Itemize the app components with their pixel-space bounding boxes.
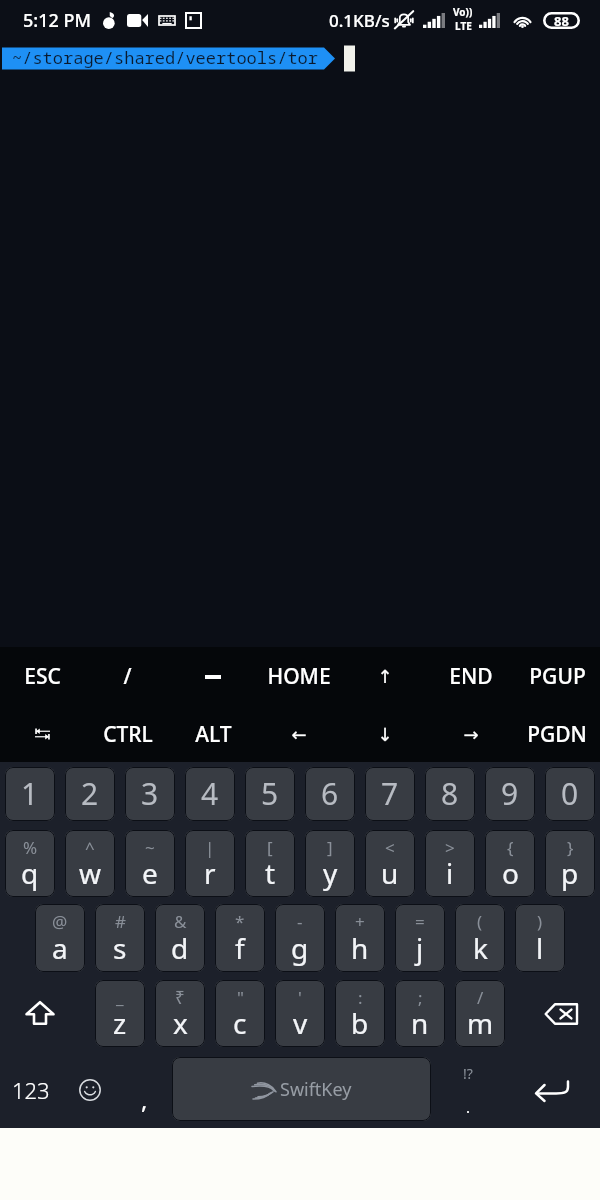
button[interactable]: ( <box>455 904 505 972</box>
button[interactable]: Enter <box>524 1063 580 1119</box>
staticText: t <box>265 854 276 892</box>
staticText: SwiftKey <box>280 1077 352 1102</box>
staticText: < <box>385 836 395 859</box>
staticText: ↓ <box>377 724 393 745</box>
button[interactable]: 6 <box>305 767 355 821</box>
staticText: e <box>142 854 158 892</box>
staticText: ↑ <box>377 666 393 687</box>
staticText: ~/storage/shared/veertools/tor <box>12 46 318 69</box>
button[interactable]: % <box>5 830 55 897</box>
button[interactable]: # <box>95 904 145 972</box>
button[interactable]: ] <box>305 830 355 897</box>
staticText: ← <box>291 724 307 745</box>
button[interactable]: _ <box>95 980 145 1047</box>
button[interactable]: | <box>185 830 235 897</box>
staticText: } <box>567 836 574 859</box>
button[interactable]: ~ <box>125 830 175 897</box>
button[interactable]: 123 <box>3 1062 59 1118</box>
staticText: = <box>415 910 425 933</box>
staticText: . <box>466 1097 471 1117</box>
button[interactable]: + <box>335 904 385 972</box>
staticText: CTRL <box>103 720 153 749</box>
staticText: w <box>79 854 102 892</box>
button[interactable]: Emoji <box>62 1062 117 1118</box>
staticText: ( <box>477 910 483 933</box>
button[interactable]: [ <box>245 830 295 897</box>
button[interactable]: 5 <box>245 767 295 821</box>
button[interactable]: ' <box>275 980 325 1047</box>
button[interactable]: < <box>365 830 415 897</box>
staticText: a <box>52 929 68 967</box>
staticText: i <box>446 854 454 892</box>
button[interactable]: ESC <box>0 647 85 706</box>
staticText: 1 <box>21 773 39 814</box>
button[interactable]: ↑ <box>342 647 428 706</box>
button[interactable]: " <box>215 980 265 1047</box>
staticText: c <box>233 1004 247 1042</box>
button[interactable]: ) <box>515 904 565 972</box>
staticText: & <box>174 910 187 933</box>
button[interactable]: ₹ <box>155 980 205 1047</box>
staticText: ; <box>418 986 423 1009</box>
button[interactable]: / <box>455 980 505 1047</box>
staticText: 0.1KB/s <box>329 9 390 32</box>
button[interactable]: Tab <box>0 706 85 762</box>
staticText: LTE <box>455 19 472 33</box>
staticText: s <box>113 929 127 967</box>
staticText: h <box>351 929 369 967</box>
button[interactable]: ^ <box>65 830 115 897</box>
staticText: n <box>411 1004 429 1042</box>
button[interactable]: ← <box>256 706 342 762</box>
button[interactable]: 4 <box>185 767 235 821</box>
staticText: r <box>204 854 216 892</box>
button[interactable]: Dash <box>170 647 256 706</box>
button[interactable]: = <box>395 904 445 972</box>
button[interactable]: ALT <box>170 706 256 762</box>
button[interactable]: 9 <box>485 767 535 821</box>
button[interactable]: / <box>85 647 170 706</box>
button[interactable]: & <box>155 904 205 972</box>
button[interactable]: { <box>485 830 535 897</box>
button[interactable]: : <box>335 980 385 1047</box>
button[interactable]: - <box>275 904 325 972</box>
staticText: j <box>416 929 424 967</box>
button[interactable]: @ <box>35 904 85 972</box>
button[interactable]: , <box>122 1062 166 1118</box>
button[interactable]: Space <box>172 1057 431 1121</box>
button[interactable]: PGDN <box>514 706 600 762</box>
button[interactable]: ; <box>395 980 445 1047</box>
staticText: 2 <box>81 773 99 814</box>
staticText: 7 <box>381 773 399 814</box>
button[interactable]: 1 <box>5 767 55 821</box>
button[interactable]: 3 <box>125 767 175 821</box>
staticText: PGDN <box>527 720 587 749</box>
button[interactable]: END <box>428 647 514 706</box>
button[interactable]: → <box>428 706 514 762</box>
button[interactable]: > <box>425 830 475 897</box>
button[interactable]: HOME <box>256 647 342 706</box>
staticText: _ <box>116 986 124 1009</box>
button[interactable]: 2 <box>65 767 115 821</box>
button[interactable]: PGUP <box>514 647 600 706</box>
button[interactable]: CTRL <box>85 706 170 762</box>
staticText: ₹ <box>175 986 185 1009</box>
button[interactable]: 0 <box>545 767 595 821</box>
staticText: # <box>115 910 126 933</box>
staticText: l <box>536 929 544 967</box>
button[interactable]: ↓ <box>342 706 428 762</box>
button[interactable]: Shift <box>12 980 68 1047</box>
button[interactable]: !? <box>440 1062 496 1118</box>
staticText: p <box>561 854 579 892</box>
staticText: ~ <box>145 836 155 859</box>
staticText: m <box>467 1004 494 1042</box>
staticText: z <box>113 1004 127 1042</box>
button[interactable]: * <box>215 904 265 972</box>
staticText: " <box>237 986 244 1009</box>
staticText: 4 <box>201 773 219 814</box>
button[interactable]: } <box>545 830 595 897</box>
button[interactable]: Backspace <box>533 980 589 1047</box>
button[interactable]: 7 <box>365 767 415 821</box>
staticText: q <box>21 854 39 892</box>
button[interactable]: 8 <box>425 767 475 821</box>
staticText: > <box>445 836 455 859</box>
